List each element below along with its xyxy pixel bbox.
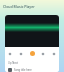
button[interactable]: Song title here	[8, 68, 56, 72]
button[interactable]: Play	[30, 51, 35, 56]
button[interactable]: Previous	[19, 52, 23, 56]
staticText: Cloud Music Player	[3, 4, 35, 9]
staticText: Song title here	[14, 68, 32, 72]
button[interactable]: Shuffle	[8, 52, 12, 56]
button[interactable]: Next	[41, 52, 45, 56]
staticText: Up Next	[8, 61, 18, 65]
button[interactable]: Repeat	[52, 52, 56, 56]
